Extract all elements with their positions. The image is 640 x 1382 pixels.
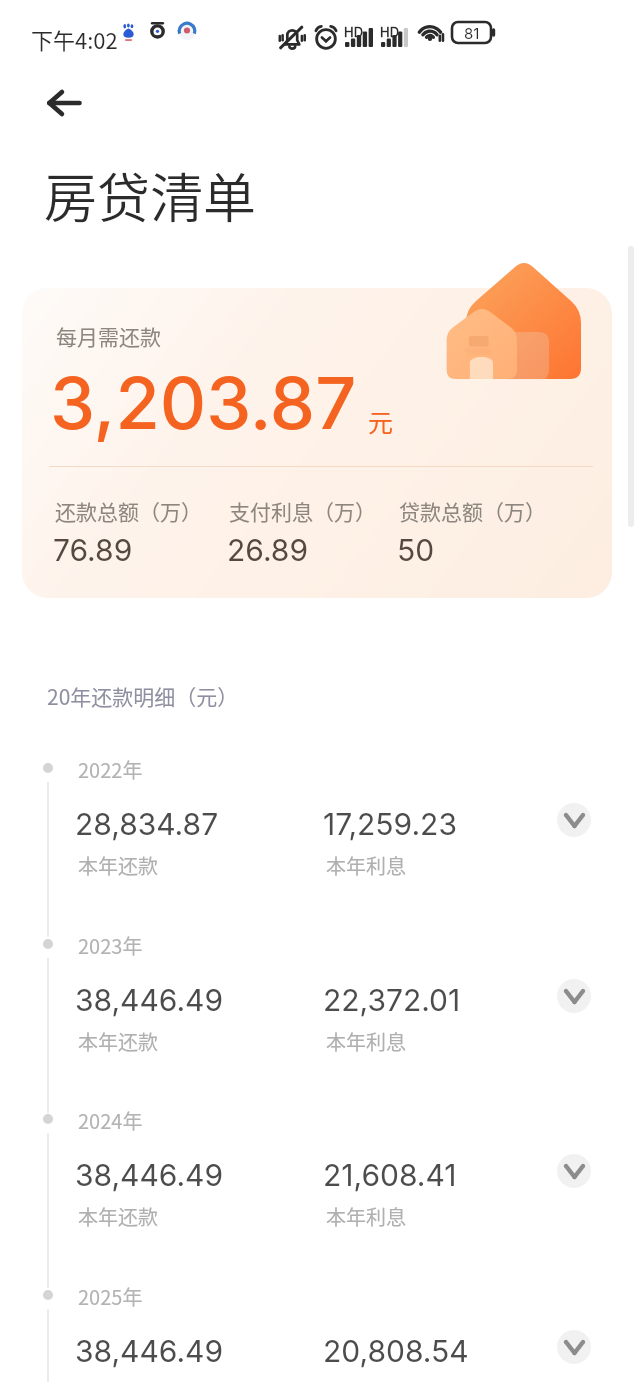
staticText: 本年利息: [326, 1202, 406, 1231]
staticText: 20,808.54: [323, 1333, 469, 1369]
staticText: 50: [397, 532, 435, 568]
button[interactable]: Expand 2025年: [557, 1330, 591, 1364]
staticText: 17,259.23: [323, 806, 457, 842]
button[interactable]: Expand 2022年: [557, 803, 591, 837]
staticText: 本年利息: [326, 1027, 406, 1056]
staticText: 38,446.49: [75, 1157, 224, 1193]
staticText: 22,372.01: [323, 982, 461, 1018]
staticText: 本年还款: [78, 1027, 158, 1056]
staticText: 本年还款: [78, 851, 158, 880]
button[interactable]: Back: [28, 72, 100, 134]
staticText: 21,608.41: [323, 1157, 457, 1193]
staticText: 2023年: [78, 931, 143, 960]
staticText: 贷款总额（万）: [399, 496, 546, 526]
staticText: 2024年: [78, 1106, 143, 1135]
staticText: 26.89: [227, 532, 309, 568]
staticText: 每月需还款: [56, 321, 161, 351]
staticText: 38,446.49: [75, 1333, 224, 1369]
staticText: 28,834.87: [75, 806, 219, 842]
staticText: 元: [368, 403, 394, 439]
staticText: 下午4:02: [31, 23, 118, 55]
button[interactable]: Expand 2024年: [557, 1154, 591, 1188]
button[interactable]: Expand 2023年: [557, 979, 591, 1013]
staticText: 本年利息: [326, 851, 406, 880]
staticText: 2025年: [78, 1282, 143, 1311]
staticText: 3,203.87: [50, 359, 357, 446]
staticText: 2022年: [78, 755, 143, 784]
staticText: 20年还款明细（元）: [47, 681, 239, 711]
staticText: 76.89: [53, 532, 133, 568]
staticText: 81: [464, 24, 480, 42]
staticText: 本年还款: [78, 1202, 158, 1231]
staticText: 房贷清单: [44, 157, 256, 234]
staticText: HD: [344, 24, 364, 40]
staticText: 38,446.49: [75, 982, 224, 1018]
staticText: 还款总额（万）: [55, 496, 202, 526]
staticText: HD: [380, 24, 400, 40]
staticText: 支付利息（万）: [229, 496, 376, 526]
